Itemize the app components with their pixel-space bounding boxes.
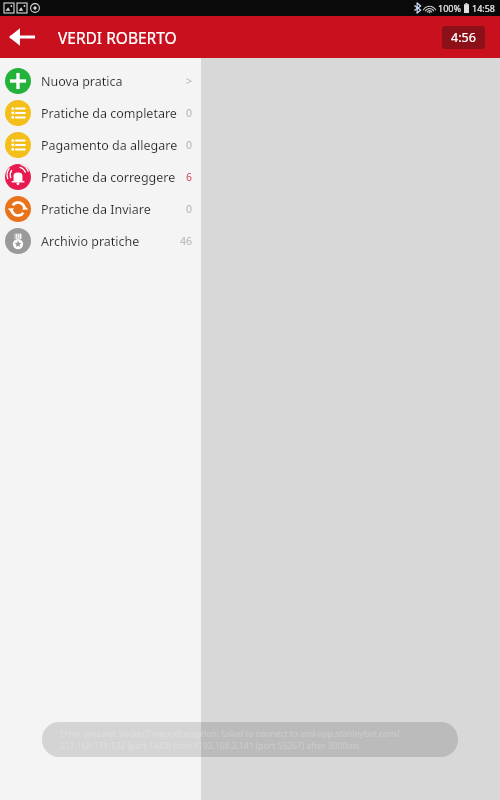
staticText: >	[185, 74, 192, 88]
staticText: Pagamento da allegare	[41, 137, 185, 154]
button[interactable]: 4:56	[442, 26, 485, 49]
button[interactable]: Pratiche da Inviare	[0, 193, 201, 225]
staticText: Archivio pratiche	[41, 233, 179, 250]
staticText: Pratiche da Inviare	[41, 201, 185, 218]
button[interactable]: Archivio pratiche	[0, 225, 201, 257]
button[interactable]: Pratiche da correggere	[0, 161, 201, 193]
staticText: Pratiche da completare	[41, 105, 185, 122]
staticText: 0	[185, 202, 192, 216]
staticText: 0	[185, 106, 192, 120]
staticText: Nuova pratica	[41, 73, 185, 90]
staticText: 14:58	[472, 2, 496, 14]
staticText: VERDI ROBERTO	[58, 27, 177, 48]
staticText: 0	[185, 138, 192, 152]
staticText: Pratiche da correggere	[41, 169, 185, 186]
staticText: 6	[185, 170, 192, 184]
button[interactable]: Pagamento da allegare	[0, 129, 201, 161]
staticText: 100%	[438, 2, 461, 14]
staticText: Error: java.net.SocketTimeoutException: …	[60, 728, 400, 740]
staticText: 4:56	[451, 29, 476, 46]
staticText: 46	[179, 234, 192, 248]
button[interactable]: Pratiche da completare	[0, 97, 201, 129]
button[interactable]: Nuova pratica	[0, 65, 201, 97]
staticText: 217.168.171.132 (port 1443) from /192.16…	[60, 740, 360, 752]
button[interactable]: Back	[0, 16, 44, 58]
